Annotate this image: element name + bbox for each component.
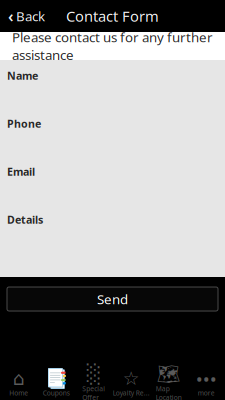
- staticText: Email: [7, 164, 35, 179]
- staticText: Please contact us for any further assist…: [12, 28, 213, 64]
- button[interactable]: ‹: [0, 0, 53, 33]
- staticText: 🗺: [157, 363, 181, 385]
- staticText: ░: [87, 364, 101, 385]
- button[interactable]: Home: [0, 366, 37, 400]
- button[interactable]: Coupons: [37, 366, 75, 400]
- staticText: Map Location: [156, 384, 182, 400]
- staticText: ⌂: [13, 368, 25, 389]
- button[interactable]: more: [187, 366, 225, 400]
- staticText: Coupons: [43, 389, 70, 397]
- staticText: more: [198, 389, 215, 397]
- staticText: Loyalty Re...: [113, 389, 150, 397]
- staticText: Contact Form: [66, 6, 159, 26]
- staticText: Phone: [7, 116, 41, 131]
- button[interactable]: Map Location: [150, 361, 187, 400]
- staticText: ☆: [123, 368, 140, 389]
- staticText: Details: [7, 212, 43, 227]
- button[interactable]: Send: [0, 277, 225, 321]
- button[interactable]: Loyalty Re...: [112, 366, 150, 400]
- staticText: ‹: [8, 5, 14, 27]
- staticText: Back: [16, 7, 45, 25]
- staticText: Send: [97, 290, 128, 308]
- staticText: 📑: [45, 368, 68, 389]
- button[interactable]: Special Offer: [75, 361, 112, 400]
- staticText: Home: [9, 389, 28, 397]
- staticText: Special Offer: [82, 384, 105, 400]
- staticText: Name: [7, 68, 38, 83]
- staticText: •••: [196, 366, 217, 391]
